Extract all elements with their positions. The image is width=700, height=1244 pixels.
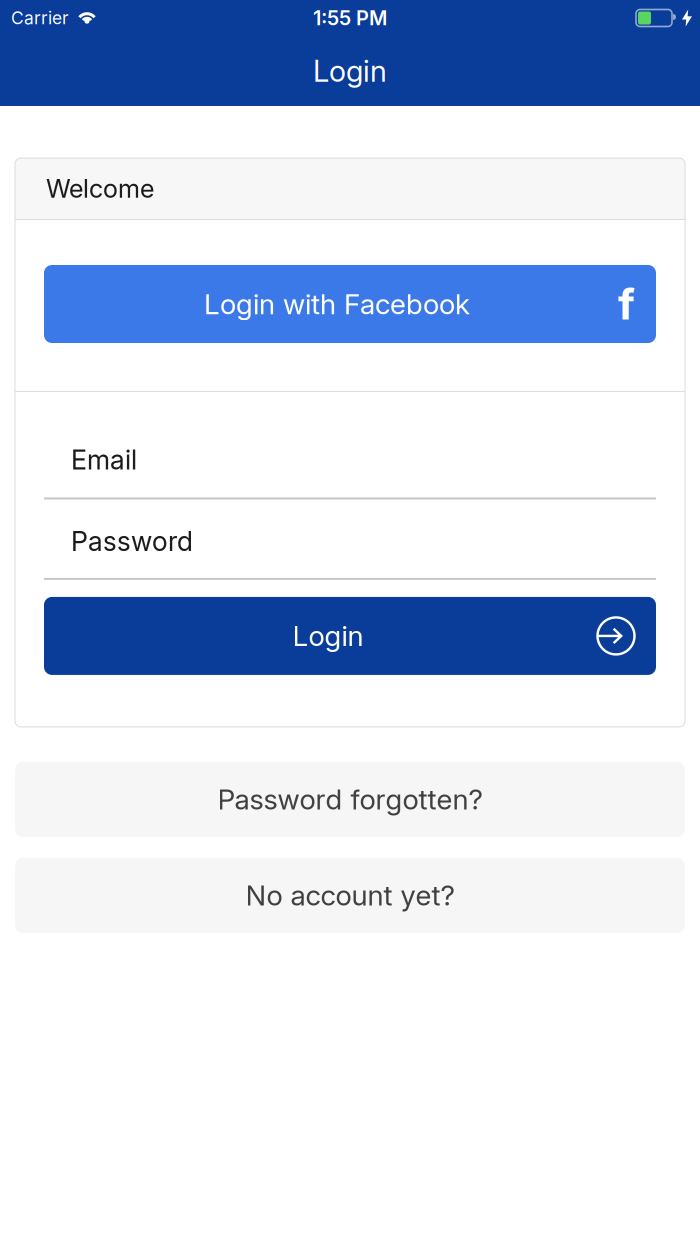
staticText: Password forgotten? (217, 783, 482, 816)
button[interactable]: Login with Facebook (44, 265, 656, 343)
staticText: f (618, 279, 635, 329)
staticText: Password (71, 525, 193, 557)
staticText: Login (313, 54, 387, 88)
staticText: Welcome (46, 174, 154, 203)
button[interactable]: Login (44, 597, 656, 675)
staticText: Login with Facebook (204, 287, 470, 320)
button[interactable]: Password forgotten? (15, 762, 685, 837)
staticText: No account yet? (245, 879, 454, 912)
button[interactable]: No account yet? (15, 858, 685, 933)
staticText: Carrier (11, 8, 69, 28)
staticText: Login (292, 619, 363, 652)
staticText: 1:55 PM (313, 6, 387, 30)
staticText: Email (71, 444, 137, 475)
